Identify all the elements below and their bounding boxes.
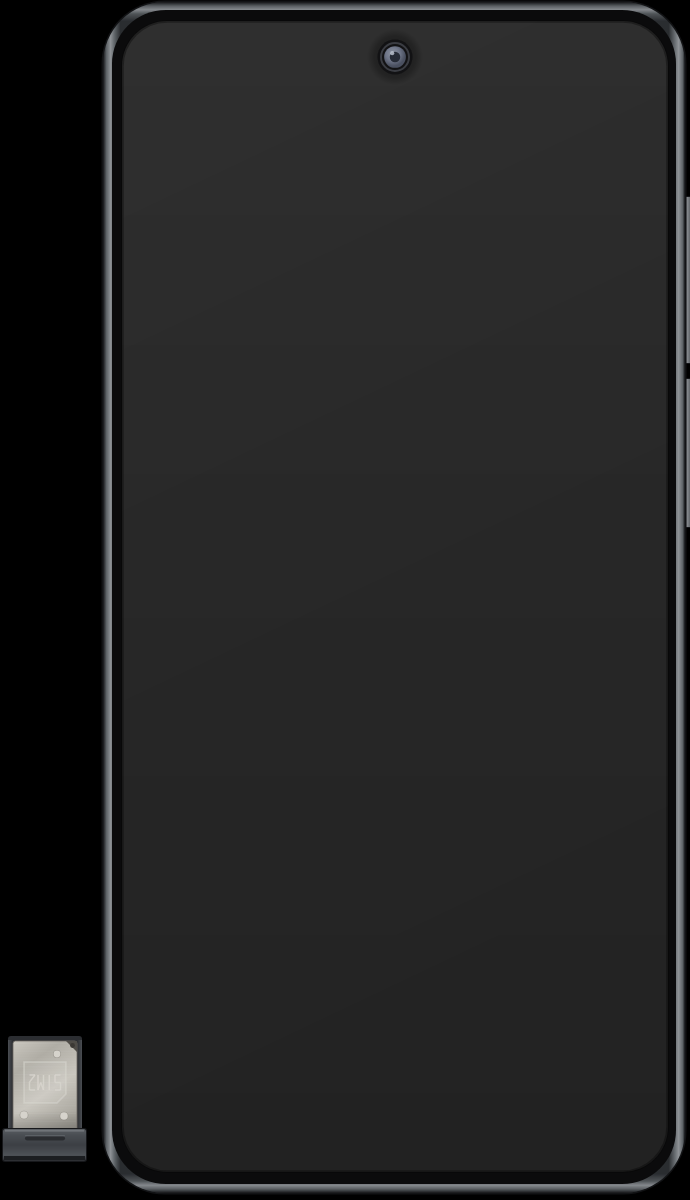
other: Phone product render with ejected SIM tr… bbox=[0, 0, 690, 1200]
